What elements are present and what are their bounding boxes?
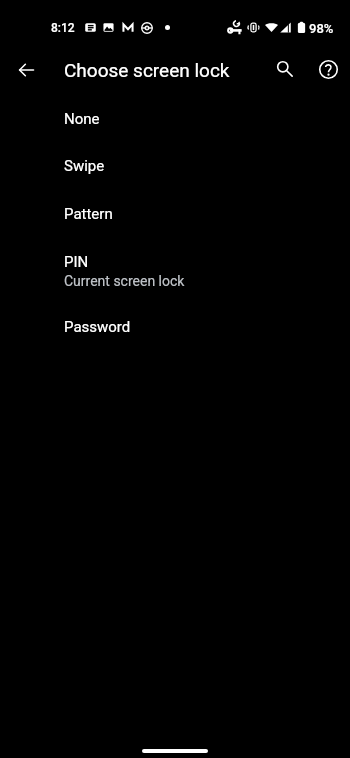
button[interactable]: PIN <box>0 238 350 303</box>
button[interactable]: Navigate up <box>5 49 46 90</box>
staticText: Pattern <box>64 205 113 223</box>
staticText: Swipe <box>64 157 105 175</box>
staticText: None <box>64 110 100 128</box>
staticText: 8:12 <box>51 21 75 35</box>
button[interactable]: Pattern <box>0 190 350 239</box>
staticText: Current screen lock <box>64 273 185 289</box>
button[interactable]: Search <box>264 48 305 89</box>
button[interactable]: Password <box>0 303 350 351</box>
button[interactable]: None <box>0 95 350 142</box>
staticText: 98% <box>309 21 334 36</box>
button[interactable]: Help <box>308 49 349 90</box>
staticText: Choose screen lock <box>64 59 230 81</box>
button[interactable]: Swipe <box>0 142 350 190</box>
staticText: PIN <box>64 253 89 271</box>
staticText: Password <box>64 318 131 336</box>
